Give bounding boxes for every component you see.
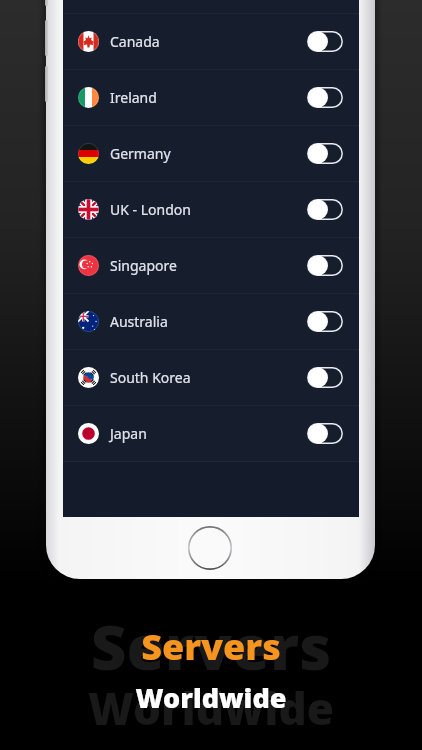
button[interactable]: Connect toggle (307, 311, 343, 332)
staticText: Canada (110, 32, 160, 51)
staticText: Worldwide (0, 679, 422, 716)
staticText: Servers (0, 604, 422, 688)
staticText: Worldwide (0, 678, 422, 738)
button[interactable]: Connect toggle (307, 367, 343, 388)
staticText: Germany (110, 144, 171, 163)
button[interactable]: Connect toggle (307, 31, 343, 52)
button[interactable]: Connect toggle (307, 423, 343, 444)
staticText: Singapore (110, 256, 177, 275)
button[interactable]: Ireland (63, 70, 359, 125)
staticText: South Korea (110, 368, 191, 387)
button[interactable]: Canada (63, 14, 359, 69)
staticText: Japan (110, 424, 147, 443)
button[interactable]: Connect toggle (307, 255, 343, 276)
button[interactable]: Connect toggle (307, 87, 343, 108)
button[interactable]: Australia (63, 294, 359, 349)
other: Home (188, 526, 232, 570)
button[interactable]: Connect toggle (307, 143, 343, 164)
staticText: Ireland (110, 88, 157, 107)
staticText: UK - London (110, 200, 191, 219)
staticText: Servers (0, 622, 422, 671)
button[interactable]: South Korea (63, 350, 359, 405)
button[interactable]: Germany (63, 126, 359, 181)
button[interactable]: Connect toggle (307, 199, 343, 220)
button[interactable]: UK - London (63, 182, 359, 237)
button[interactable]: Singapore (63, 238, 359, 293)
button[interactable]: Japan (63, 406, 359, 461)
staticText: Australia (110, 312, 168, 331)
